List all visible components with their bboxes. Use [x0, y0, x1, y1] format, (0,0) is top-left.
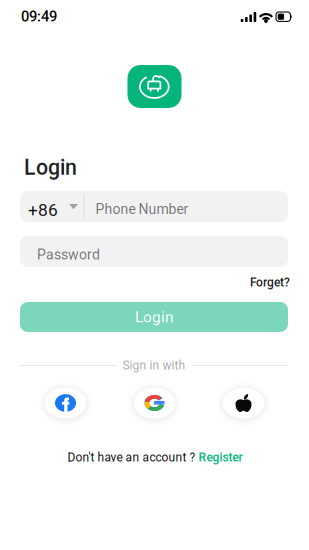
- staticText: 09:49: [21, 8, 57, 25]
- staticText: Password: [37, 246, 100, 263]
- staticText: Don't have an account ?: [67, 450, 195, 465]
- button[interactable]: Login: [20, 302, 288, 332]
- staticText: +86: [28, 200, 58, 220]
- button[interactable]: Sign in with Facebook: [44, 387, 87, 419]
- staticText: Register: [198, 450, 242, 465]
- staticText: Phone Number: [95, 201, 188, 217]
- staticText: Sign in with: [122, 358, 185, 373]
- button[interactable]: Forget?: [230, 276, 290, 289]
- staticText: Login: [135, 308, 173, 326]
- button[interactable]: Don't have an account ?: [55, 451, 255, 464]
- button[interactable]: +86: [20, 191, 83, 222]
- staticText: Login: [24, 155, 77, 180]
- button[interactable]: Sign in with Apple: [222, 387, 265, 419]
- staticText: Forget?: [250, 275, 290, 290]
- button[interactable]: Sign in with Google: [133, 387, 176, 419]
